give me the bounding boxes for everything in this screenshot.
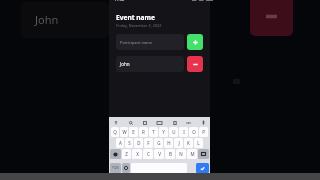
staticText: D — [137, 140, 141, 146]
button[interactable]: S — [125, 138, 133, 148]
button[interactable]: Voice input — [200, 119, 207, 126]
button[interactable]: P — [199, 127, 208, 137]
button[interactable]: Q — [111, 127, 119, 137]
button[interactable]: L — [194, 138, 203, 148]
button[interactable]: B — [165, 149, 175, 159]
button[interactable]: Remove — [250, 0, 293, 36]
button[interactable]: T — [149, 127, 158, 137]
button[interactable]: C — [143, 149, 153, 159]
button[interactable]: Z — [122, 149, 131, 159]
staticText: 11:02 — [114, 0, 125, 2]
button[interactable]: John — [21, 2, 109, 38]
button[interactable]: V — [154, 149, 164, 159]
button[interactable]: Participant name — [116, 34, 184, 50]
staticText: Q — [113, 129, 117, 135]
staticText: F — [147, 140, 150, 146]
button[interactable]: N — [176, 149, 186, 159]
staticText: U — [172, 129, 176, 135]
button[interactable]: J — [174, 138, 183, 148]
button[interactable]: U — [169, 127, 178, 137]
staticText: A — [119, 140, 122, 146]
button[interactable]: W — [120, 127, 128, 137]
button[interactable]: X — [132, 149, 142, 159]
staticText: John — [35, 12, 59, 27]
button[interactable]: Emoji — [122, 163, 130, 173]
staticText: J — [178, 140, 180, 146]
staticText: V — [158, 151, 161, 157]
button[interactable]: Clipboard — [171, 119, 178, 126]
staticText: H — [167, 140, 171, 146]
staticText: Y — [162, 129, 165, 135]
staticText: ?123 — [112, 166, 119, 170]
button[interactable]: K — [184, 138, 193, 148]
button[interactable]: D — [134, 138, 143, 148]
staticText: John — [120, 61, 130, 67]
button[interactable]: E — [129, 127, 138, 137]
button[interactable]: Search — [127, 119, 134, 126]
button[interactable]: O — [189, 127, 198, 137]
staticText: N — [179, 151, 183, 157]
staticText: O — [192, 129, 196, 135]
staticText: I — [183, 129, 185, 135]
staticText: C — [147, 151, 150, 157]
staticText: Participant name — [120, 40, 153, 45]
button[interactable]: H — [164, 138, 173, 148]
staticText: M — [190, 151, 195, 157]
staticText: P — [202, 129, 205, 135]
button[interactable]: A — [116, 138, 124, 148]
button[interactable]: John — [116, 56, 184, 72]
staticText: R — [142, 129, 145, 135]
button[interactable]: GIF — [156, 119, 163, 126]
staticText: K — [187, 140, 190, 146]
button[interactable]: M — [187, 149, 197, 159]
staticText: Friday, November 4, 2022 — [116, 23, 162, 28]
button[interactable]: Sticker — [141, 119, 148, 126]
button[interactable]: Remove participant — [187, 56, 203, 72]
staticText: G — [157, 140, 161, 146]
staticText: E — [132, 129, 135, 135]
button[interactable]: I — [179, 127, 188, 137]
button[interactable]: ?123 — [110, 163, 121, 173]
button[interactable]: Done — [196, 163, 209, 173]
staticText: L — [197, 140, 200, 146]
button[interactable]: Delete — [198, 149, 209, 159]
button[interactable]: More — [185, 119, 192, 126]
staticText: Event name — [116, 13, 155, 22]
button[interactable]: Format — [112, 119, 119, 126]
staticText: X — [136, 151, 139, 157]
staticText: S — [128, 140, 131, 146]
staticText: T — [152, 129, 155, 135]
staticText: Z — [125, 151, 128, 157]
staticText: B — [169, 151, 172, 157]
button[interactable]: Y — [159, 127, 168, 137]
staticText: W — [122, 129, 127, 135]
button[interactable]: R — [139, 127, 148, 137]
button[interactable]: F — [144, 138, 153, 148]
button[interactable]: Add participant — [187, 34, 203, 50]
button[interactable]: G — [154, 138, 163, 148]
button[interactable]: Shift — [110, 149, 121, 159]
